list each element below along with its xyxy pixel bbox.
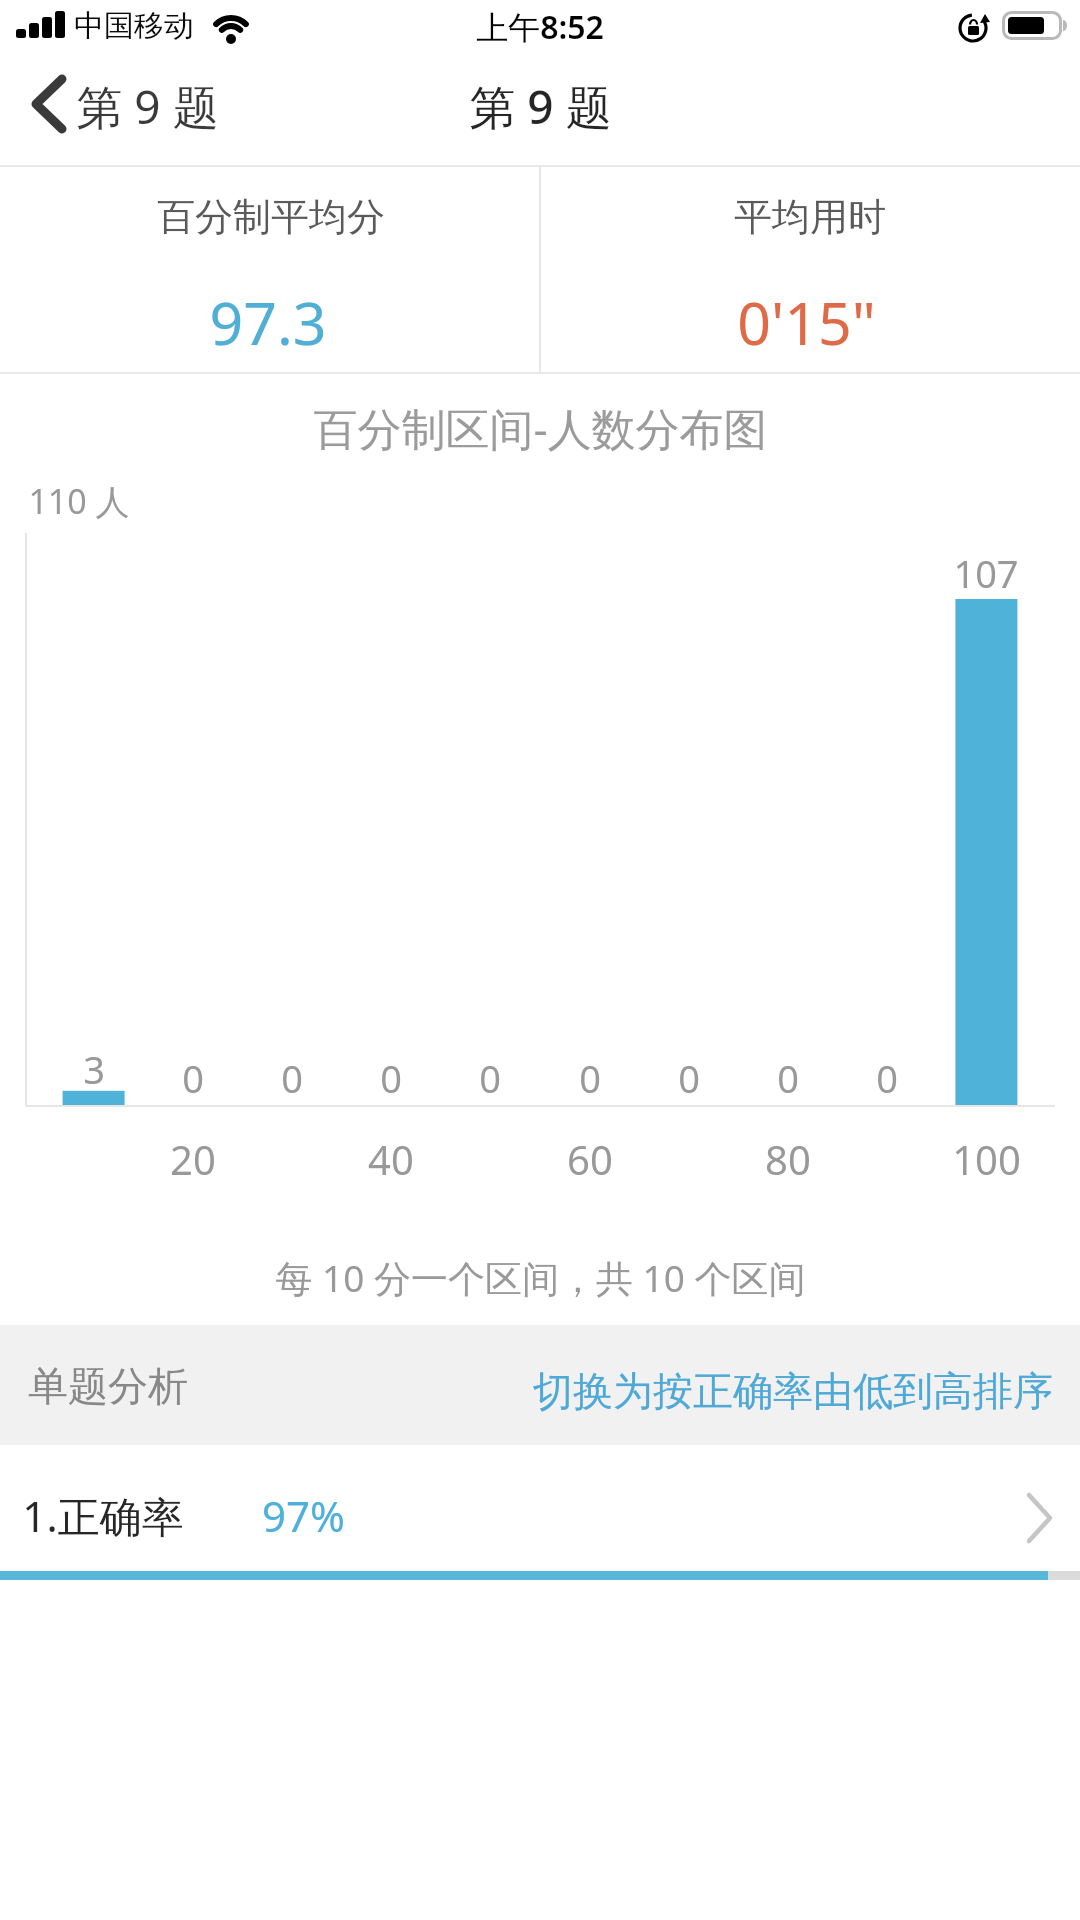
staticText: 0'15"	[737, 282, 876, 362]
staticText: 单题分析	[28, 1361, 188, 1411]
staticText: 1.正确率	[22, 1487, 184, 1544]
staticText: 60	[567, 1132, 613, 1186]
staticText: 0	[777, 1052, 799, 1104]
staticText: 每 10 分一个区间，共 10 个区间	[275, 1252, 806, 1303]
staticText: 切换为按正确率由低到高排序	[533, 1366, 1053, 1416]
staticText: 上午8:52	[476, 5, 604, 49]
staticText: 百分制区间-人数分布图	[313, 398, 768, 458]
staticText: 0	[281, 1052, 303, 1104]
staticText: 0	[479, 1052, 501, 1104]
staticText: 80	[765, 1132, 811, 1186]
staticText: 第 9 题	[76, 75, 219, 138]
staticText: 3	[83, 1043, 105, 1095]
staticText: 中国移动	[74, 7, 194, 45]
staticText: 百分制平均分	[157, 193, 385, 241]
staticText: 107	[953, 547, 1019, 599]
staticText: 20	[170, 1132, 216, 1186]
staticText: 0	[678, 1052, 700, 1104]
button[interactable]	[0, 1445, 1080, 1580]
staticText: 40	[368, 1132, 414, 1186]
staticText: 0	[182, 1052, 204, 1104]
staticText: 第 9 题	[469, 75, 612, 138]
staticText: 97.3	[209, 282, 327, 362]
button[interactable]	[14, 66, 234, 152]
staticText: 平均用时	[734, 193, 886, 241]
staticText: 0	[579, 1052, 601, 1104]
staticText: 110 人	[28, 478, 130, 524]
staticText: 0	[876, 1052, 898, 1104]
staticText: 97%	[262, 1487, 345, 1544]
staticText: 0	[380, 1052, 402, 1104]
button[interactable]	[520, 1345, 1065, 1425]
staticText: 100	[952, 1132, 1021, 1186]
